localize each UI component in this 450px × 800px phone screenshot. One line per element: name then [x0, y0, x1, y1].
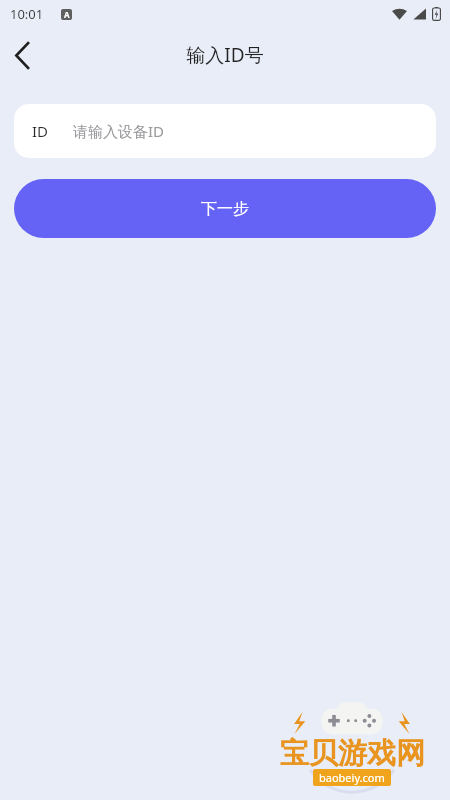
staticText: baobeiy.com — [319, 770, 385, 785]
staticText: 10:01 — [10, 5, 44, 23]
button[interactable]: 下一步 — [14, 179, 436, 238]
staticText: ID — [32, 121, 49, 141]
staticText: 下一步 — [201, 199, 249, 219]
button[interactable]: ID — [14, 104, 436, 158]
staticText: 宝贝游戏网 — [280, 735, 425, 772]
staticText: 请输入设备ID — [73, 121, 165, 141]
button[interactable]: Back — [0, 32, 46, 78]
staticText: A — [64, 9, 70, 20]
staticText: 输入ID号 — [186, 42, 264, 68]
